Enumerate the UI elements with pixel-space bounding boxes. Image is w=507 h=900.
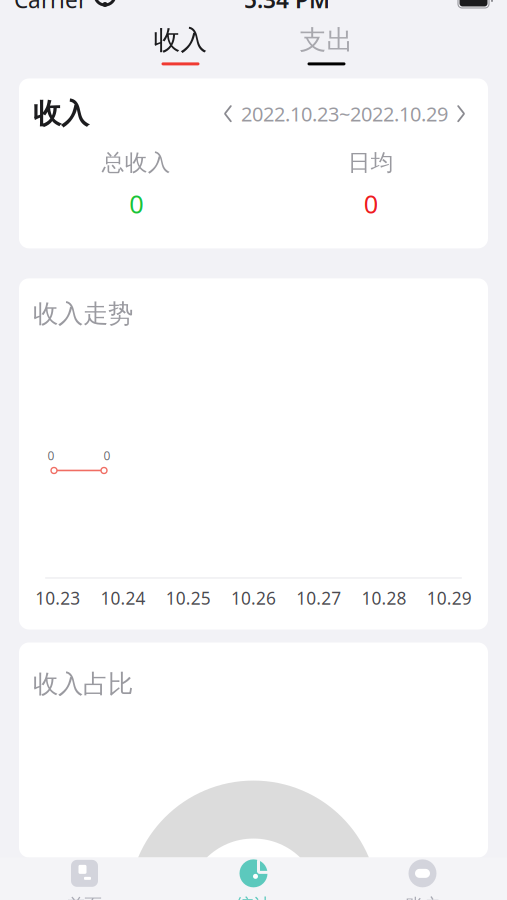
button[interactable]: 统计 — [169, 857, 338, 900]
staticText: 收入走势 — [33, 298, 133, 329]
staticText: 总收入 — [102, 149, 171, 177]
staticText: 日均 — [348, 149, 394, 177]
staticText: 10.27 — [296, 586, 341, 609]
staticText: 0 — [47, 448, 54, 463]
staticText: 0 — [364, 187, 378, 220]
button[interactable]: Previous week — [215, 99, 241, 129]
staticText: 支出 — [299, 24, 353, 56]
staticText: 2022.10.23~2022.10.29 — [241, 100, 448, 127]
staticText: 5:34 PM — [244, 0, 330, 15]
staticText: 统计 — [236, 894, 270, 900]
staticText: 10.26 — [231, 586, 276, 609]
button[interactable]: Next week — [448, 99, 474, 129]
staticText: 10.25 — [166, 586, 211, 609]
button[interactable]: 账户 — [338, 857, 507, 900]
button[interactable]: 支出 — [283, 18, 369, 70]
staticText: 收入占比 — [33, 668, 133, 699]
staticText: 0 — [129, 187, 143, 220]
staticText: Carrier — [14, 0, 87, 15]
staticText: 0 — [103, 448, 110, 463]
staticText: 账户 — [405, 894, 439, 900]
button[interactable]: 收入 — [137, 18, 223, 70]
staticText: 首页 — [67, 894, 101, 900]
staticText: 10.23 — [35, 586, 80, 609]
staticText: 10.24 — [100, 586, 145, 609]
staticText: 10.28 — [362, 586, 407, 609]
staticText: 收入 — [153, 24, 207, 56]
staticText: 10.29 — [427, 586, 472, 609]
button[interactable]: 首页 — [0, 857, 169, 900]
staticText: 收入 — [33, 96, 89, 131]
